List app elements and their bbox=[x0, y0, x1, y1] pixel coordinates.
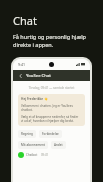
staticText: 9:41 bbox=[18, 62, 25, 67]
staticText: Regning bbox=[21, 132, 33, 136]
staticText: Forbindelse bbox=[42, 132, 59, 136]
staticText: 09:41 bbox=[41, 153, 49, 157]
staticText: Mit abonnement bbox=[21, 143, 45, 147]
button[interactable]: Regning bbox=[18, 130, 36, 138]
button[interactable]: Mit abonnement bbox=[18, 141, 48, 149]
button[interactable]: Andet bbox=[51, 141, 66, 149]
staticText: Vælg et af knapperne nedenfor, så finder… bbox=[21, 115, 79, 123]
staticText: Hej Frederikke 👋 bbox=[21, 97, 48, 101]
staticText: Andet bbox=[54, 143, 63, 147]
button[interactable]: Forbindelse bbox=[39, 130, 62, 138]
staticText: Chat bbox=[13, 13, 37, 28]
staticText: Velkommen i chatten. Jeg er YouSees chat… bbox=[21, 104, 73, 112]
staticText: Tirsdag, 09:41 — samtale startet bbox=[18, 86, 85, 90]
staticText: Få hurtig og personlig hjælp direkte i a… bbox=[13, 33, 86, 49]
button[interactable]: Tilbage bbox=[17, 72, 24, 79]
staticText: YouSee Chat bbox=[26, 73, 51, 79]
staticText: Chatbot bbox=[26, 153, 38, 157]
